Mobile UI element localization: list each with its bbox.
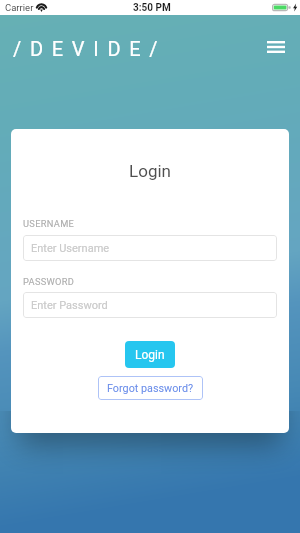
staticText: PASSWORD <box>23 276 75 287</box>
button[interactable]: Enter Username <box>23 235 277 261</box>
staticText: Login <box>135 348 165 362</box>
staticText: /DEVIDE/ <box>13 37 167 60</box>
button[interactable]: Open navigation menu <box>261 32 291 62</box>
staticText: USERNAME <box>23 218 75 229</box>
staticText: Login <box>11 161 289 181</box>
button[interactable]: Forgot password? <box>98 376 203 400</box>
staticText: Enter Password <box>31 299 108 312</box>
staticText: Enter Username <box>31 242 110 255</box>
button[interactable]: Enter Password <box>23 292 277 318</box>
staticText: Carrier <box>5 2 34 13</box>
staticText: Forgot password? <box>107 382 194 395</box>
button[interactable]: Login <box>125 341 175 368</box>
staticText: 3:50 PM <box>133 2 171 14</box>
